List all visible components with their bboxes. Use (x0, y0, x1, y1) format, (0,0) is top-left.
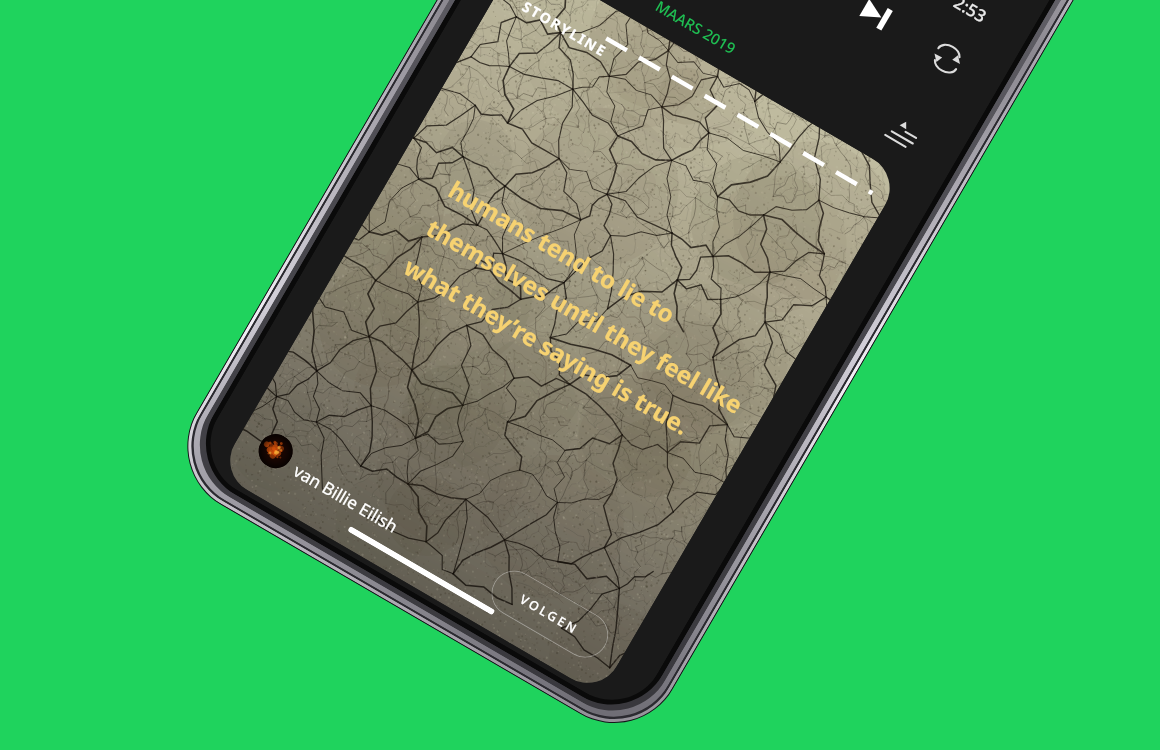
staticText: STORYLINE (519, 0, 611, 61)
staticText: humans tend to lie to themselves until t… (398, 173, 772, 460)
button[interactable] (218, 0, 902, 695)
staticText: MAARS 2019 (652, 0, 740, 58)
staticText: VOLGEN (517, 591, 582, 639)
button[interactable]: Profile (252, 428, 299, 474)
button[interactable]: Next story (850, 0, 902, 42)
staticText: van Billie Eilish (290, 459, 402, 538)
button[interactable]: Repeat (921, 33, 973, 85)
button[interactable]: VOLGEN (483, 562, 617, 666)
staticText: 2:53 (950, 0, 991, 28)
button[interactable]: Queue (877, 109, 929, 161)
